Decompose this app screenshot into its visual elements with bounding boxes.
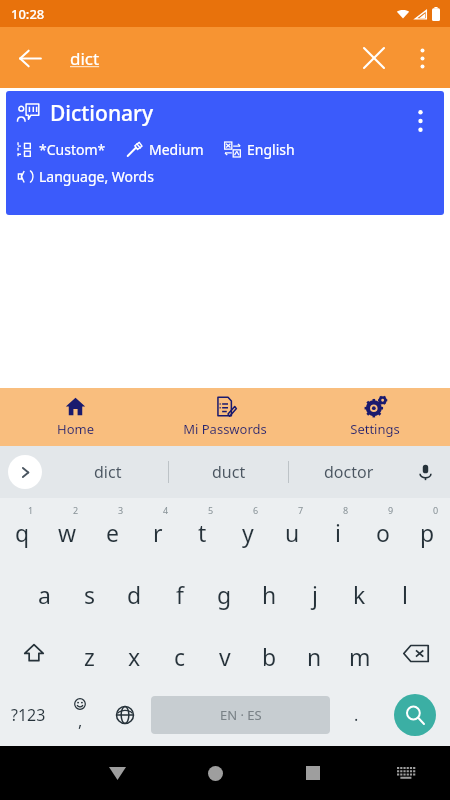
button[interactable]: dict (48, 446, 168, 498)
button[interactable]: 5 (180, 498, 225, 560)
button[interactable]: Settings (300, 388, 450, 446)
staticText: English (247, 140, 295, 159)
button[interactable]: ?123 (0, 684, 57, 746)
staticText: l (402, 579, 408, 610)
button[interactable]: Mi Passwords (150, 388, 300, 446)
button[interactable]: Card options (402, 103, 438, 139)
staticText: a (38, 579, 51, 610)
button[interactable]: h (247, 560, 292, 622)
staticText: Mi Passwords (183, 420, 267, 438)
button[interactable]: Emoji and comma (57, 684, 102, 746)
staticText: q (15, 517, 30, 548)
staticText: s (84, 579, 96, 610)
button[interactable]: 1 (0, 498, 45, 560)
staticText: 3 (118, 504, 124, 516)
button[interactable]: Backspace (382, 622, 450, 684)
staticText: Language, Words (39, 167, 154, 186)
button[interactable]: d (112, 560, 157, 622)
staticText: Home (57, 420, 94, 438)
staticText: d (127, 579, 142, 610)
staticText: o (376, 517, 390, 548)
button[interactable]: . (334, 684, 379, 746)
button[interactable]: g (202, 560, 247, 622)
button[interactable]: l (382, 560, 427, 622)
staticText: 1 (28, 504, 34, 516)
button[interactable]: Back (8, 36, 52, 80)
staticText: 9 (388, 504, 394, 516)
staticText: y (242, 517, 254, 548)
button[interactable]: 4 (135, 498, 180, 560)
staticText: b (262, 641, 277, 672)
button[interactable]: More options (400, 36, 444, 80)
staticText: k (353, 579, 366, 610)
staticText: . (354, 704, 359, 726)
button[interactable]: duct (169, 446, 288, 498)
staticText: ?123 (11, 704, 46, 726)
staticText: 8 (343, 504, 349, 516)
button[interactable]: 7 (270, 498, 315, 560)
button[interactable]: Keyboard (362, 746, 450, 800)
button[interactable]: 2 (45, 498, 90, 560)
staticText: EN · ES (220, 706, 262, 724)
button[interactable]: z (67, 622, 112, 684)
button[interactable]: Recents (264, 746, 362, 800)
staticText: t (198, 517, 207, 548)
staticText: 2 (73, 504, 79, 516)
button[interactable]: n (292, 622, 337, 684)
staticText: 10:28 (11, 5, 45, 23)
staticText: dict (70, 47, 100, 70)
button[interactable]: c (157, 622, 202, 684)
staticText: *Custom* (39, 140, 106, 159)
button[interactable]: EN · ES (151, 696, 330, 734)
staticText: p (420, 517, 435, 548)
staticText: m (349, 641, 371, 672)
button[interactable]: j (292, 560, 337, 622)
staticText: , (78, 710, 83, 732)
staticText: f (176, 579, 184, 610)
staticText: Dictionary (50, 99, 154, 128)
staticText: z (84, 641, 95, 672)
staticText: j (312, 579, 318, 610)
button[interactable]: 0 (405, 498, 450, 560)
button[interactable]: a (22, 560, 67, 622)
button[interactable]: Voice input (408, 455, 442, 489)
button[interactable]: 6 (225, 498, 270, 560)
button[interactable]: s (67, 560, 112, 622)
staticText: w (58, 517, 77, 548)
staticText: dict (94, 461, 122, 483)
staticText: 7 (298, 504, 304, 516)
button[interactable]: x (112, 622, 157, 684)
staticText: 6 (253, 504, 259, 516)
button[interactable]: 9 (360, 498, 405, 560)
staticText: 0 (433, 504, 439, 516)
button[interactable]: Dictionary (6, 91, 444, 215)
button[interactable]: doctor (289, 446, 408, 498)
staticText: 5 (208, 504, 214, 516)
button[interactable]: Home (166, 746, 264, 800)
button[interactable]: Shift (0, 622, 67, 684)
staticText: h (262, 579, 277, 610)
button[interactable]: Search (394, 694, 436, 736)
button[interactable]: k (337, 560, 382, 622)
button[interactable]: v (202, 622, 247, 684)
button[interactable]: Expand suggestions (8, 455, 42, 489)
button[interactable]: b (247, 622, 292, 684)
button[interactable]: Clear (352, 36, 396, 80)
staticText: r (153, 517, 163, 548)
button[interactable]: Change language (102, 684, 147, 746)
staticText: Medium (149, 140, 204, 159)
button[interactable]: m (337, 622, 382, 684)
button[interactable]: 3 (90, 498, 135, 560)
staticText: u (285, 517, 300, 548)
button[interactable]: f (157, 560, 202, 622)
button[interactable]: Back (68, 746, 166, 800)
button[interactable]: 8 (315, 498, 360, 560)
staticText: c (174, 641, 186, 672)
staticText: 4 (163, 504, 169, 516)
staticText: doctor (324, 461, 374, 483)
staticText: v (219, 641, 231, 672)
button[interactable]: Home (0, 388, 150, 446)
staticText: x (128, 641, 141, 672)
button[interactable]: dict (70, 38, 230, 78)
staticText: g (217, 579, 232, 610)
